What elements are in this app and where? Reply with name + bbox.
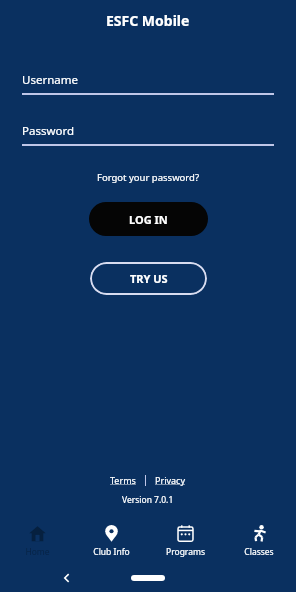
button[interactable]: Home [0,518,74,564]
staticText: Terms [110,474,136,486]
button[interactable]: Password [22,123,274,146]
staticText: Username [22,72,78,88]
staticText: Forgot your password? [97,171,200,184]
staticText: LOG IN [129,212,168,227]
button[interactable]: Privacy [151,472,190,488]
button[interactable]: Forgot your password? [89,168,208,187]
staticText: Classes [244,546,274,558]
button[interactable]: Terms [106,472,140,488]
button[interactable]: TRY US [90,262,207,295]
staticText: Password [22,123,75,139]
staticText: ESFC Mobile [106,11,190,30]
button[interactable]: Classes [222,518,296,564]
staticText: Club Info [93,546,130,558]
staticText: Programs [166,546,205,558]
button[interactable]: Club Info [74,518,148,564]
staticText: Home [25,546,50,558]
staticText: TRY US [130,271,168,286]
staticText: Privacy [155,474,186,486]
button[interactable]: Username [22,72,274,95]
button[interactable]: Programs [148,518,222,564]
button[interactable]: LOG IN [89,202,208,236]
staticText: Version 7.0.1 [122,494,174,506]
